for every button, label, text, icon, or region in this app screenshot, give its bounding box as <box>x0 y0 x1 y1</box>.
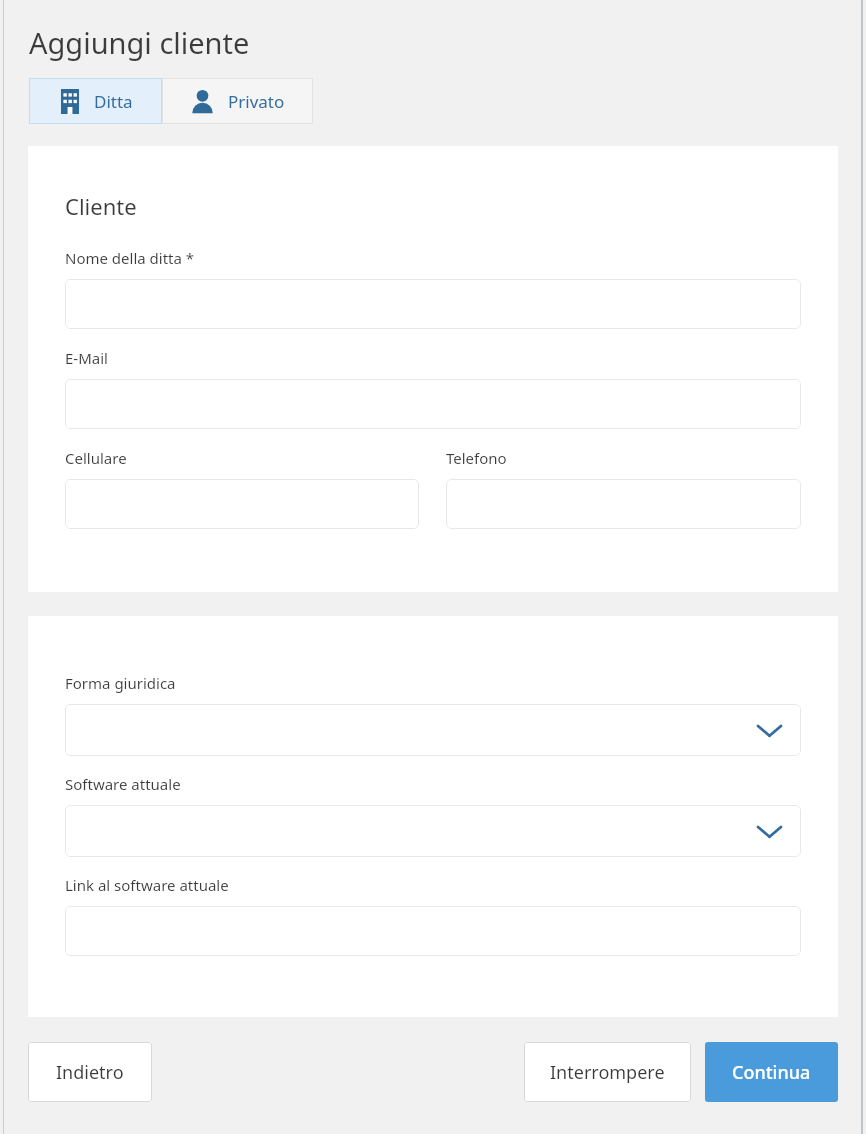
staticText: Privato <box>228 90 285 113</box>
button[interactable] <box>65 379 801 429</box>
staticText: Interrompere <box>550 1060 665 1085</box>
staticText: Nome della ditta * <box>65 248 195 268</box>
button[interactable]: Open dropdown <box>65 805 801 857</box>
button[interactable]: Privato <box>162 78 313 124</box>
staticText: E-Mail <box>65 348 108 368</box>
button[interactable] <box>65 279 801 329</box>
button[interactable]: Ditta <box>29 78 162 124</box>
button[interactable]: Interrompere <box>524 1042 691 1102</box>
button[interactable] <box>65 906 801 956</box>
button[interactable] <box>65 479 419 529</box>
button[interactable]: Continua <box>705 1042 838 1102</box>
button[interactable]: Open dropdown <box>65 704 801 756</box>
staticText: Cellulare <box>65 448 127 468</box>
staticText: Ditta <box>94 90 133 113</box>
staticText: Aggiungi cliente <box>29 23 250 62</box>
staticText: Cliente <box>65 191 137 221</box>
staticText: Software attuale <box>65 774 181 794</box>
staticText: Telefono <box>446 448 507 468</box>
staticText: Continua <box>732 1060 811 1085</box>
staticText: Indietro <box>56 1060 124 1085</box>
staticText: Link al software attuale <box>65 875 229 895</box>
button[interactable] <box>446 479 801 529</box>
button[interactable]: Indietro <box>28 1042 152 1102</box>
staticText: Forma giuridica <box>65 673 176 693</box>
